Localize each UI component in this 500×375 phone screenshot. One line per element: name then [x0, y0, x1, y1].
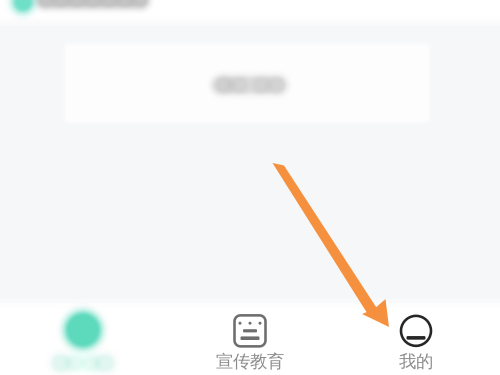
button[interactable]: 首页: [23, 303, 143, 375]
button[interactable]: 宣传教育: [190, 307, 310, 375]
staticText: 我的: [399, 351, 433, 372]
staticText: 宣传教育: [216, 351, 284, 372]
button[interactable]: 内容卡片: [61, 40, 433, 126]
button[interactable]: 我的: [356, 307, 476, 375]
